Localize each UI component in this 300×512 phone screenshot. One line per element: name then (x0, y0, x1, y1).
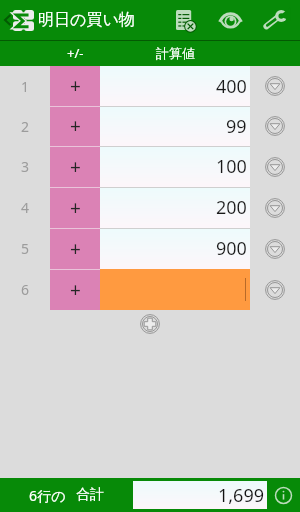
button[interactable]: +/- (50, 40, 100, 66)
button[interactable]: + (50, 66, 100, 106)
button[interactable]: Row options (250, 269, 300, 310)
button[interactable]: + (50, 146, 100, 187)
staticText: + (70, 113, 81, 139)
button[interactable]: 100 (100, 146, 250, 187)
staticText: 計算値 (156, 45, 195, 61)
button[interactable]: 99 (100, 106, 250, 146)
staticText: 6行の (29, 486, 66, 505)
staticText: +/- (67, 44, 84, 62)
button[interactable]: Settings (252, 0, 300, 40)
staticText: 100 (216, 154, 247, 179)
staticText: 2 (21, 117, 30, 136)
button[interactable]: 200 (100, 187, 250, 228)
button[interactable]: 1,699 (133, 481, 267, 509)
button[interactable]: 400 (100, 66, 250, 106)
button[interactable]: 計算値 (100, 40, 250, 66)
staticText: 5 (21, 239, 30, 258)
button[interactable]: Row options (250, 66, 300, 106)
staticText: + (70, 73, 81, 99)
staticText: 合計 (76, 486, 104, 504)
button[interactable]: Info (267, 478, 300, 512)
staticText: 3 (21, 157, 30, 176)
button[interactable]: + (50, 187, 100, 228)
staticText: 1 (21, 77, 30, 96)
button[interactable]: Row options (250, 228, 300, 269)
button[interactable]: Preview (208, 0, 252, 40)
button[interactable]: 明日の買い物 (0, 0, 135, 40)
button[interactable]: Add row (137, 311, 163, 337)
staticText: 6 (21, 280, 30, 299)
button[interactable]: + (50, 269, 100, 310)
button[interactable]: Row options (250, 146, 300, 187)
staticText: 200 (216, 195, 247, 220)
button[interactable]: Row options (250, 106, 300, 146)
button[interactable]: + (50, 106, 100, 146)
staticText: + (70, 195, 81, 221)
staticText: 明日の買い物 (38, 10, 135, 30)
staticText: + (70, 154, 81, 180)
staticText: 1,699 (218, 483, 265, 508)
button[interactable]: Row options (250, 187, 300, 228)
staticText: + (70, 277, 81, 303)
staticText: 99 (226, 114, 247, 139)
staticText: 400 (216, 74, 247, 99)
staticText: + (70, 236, 81, 262)
staticText: 4 (21, 198, 30, 217)
button[interactable] (100, 269, 250, 310)
button[interactable]: Clear list (162, 0, 208, 40)
button[interactable]: + (50, 228, 100, 269)
staticText: 900 (216, 236, 247, 261)
button[interactable]: 900 (100, 228, 250, 269)
